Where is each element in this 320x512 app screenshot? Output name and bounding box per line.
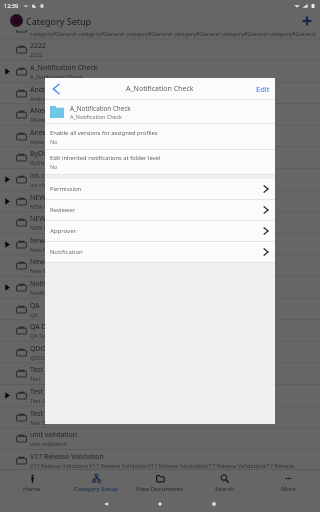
staticText: A_Notification Check bbox=[30, 63, 98, 73]
staticText: QA Demo bbox=[30, 332, 55, 339]
staticText: A_Notification Check bbox=[70, 113, 122, 120]
staticText: Home bbox=[23, 485, 41, 493]
button[interactable]: Notification bbox=[0, 276, 320, 298]
staticText: ios check bbox=[30, 181, 54, 188]
staticText: Search bbox=[215, 485, 234, 493]
staticText: unit validation bbox=[30, 430, 78, 440]
button[interactable]: A_Notification Check bbox=[45, 100, 275, 123]
staticText: A_Notification Check bbox=[30, 73, 84, 80]
button[interactable]: A_Notification Check bbox=[0, 60, 320, 82]
button[interactable]: Permission bbox=[45, 179, 275, 199]
button[interactable]: ByDivision bbox=[0, 146, 320, 168]
staticText: Notification bbox=[50, 248, 83, 256]
staticText: Test bbox=[30, 365, 44, 375]
staticText: Android bbox=[30, 95, 51, 102]
staticText: ByDivision bbox=[30, 149, 65, 159]
staticText: Anew bbox=[30, 128, 49, 138]
staticText: NEW CAT bbox=[30, 193, 60, 203]
button[interactable]: NEW CAT bbox=[0, 190, 320, 212]
staticText: New Test bbox=[30, 267, 54, 274]
staticText: New Folder bbox=[30, 246, 60, 253]
button[interactable]: More bbox=[256, 470, 320, 496]
button[interactable]: Edit inherited notifications at folder l… bbox=[45, 150, 275, 174]
staticText: V17 Release Validation bbox=[30, 452, 104, 462]
staticText: unit validation bbox=[30, 440, 67, 447]
button[interactable]: Add bbox=[299, 13, 315, 29]
button[interactable]: Search bbox=[192, 470, 256, 496]
staticText: A_Notification Check bbox=[70, 104, 131, 113]
staticText: category#General category#General catego… bbox=[30, 30, 317, 37]
staticText: NEW CAT2 bbox=[30, 224, 57, 231]
button[interactable]: unit validation bbox=[0, 427, 320, 449]
button[interactable]: Test 3 bbox=[0, 406, 320, 428]
button[interactable]: QDOC bbox=[0, 341, 320, 363]
staticText: 2222 bbox=[30, 41, 47, 51]
button[interactable]: Test 2 bbox=[0, 384, 320, 406]
button[interactable]: ios check bbox=[0, 168, 320, 190]
staticText: Approver bbox=[50, 227, 76, 235]
button[interactable]: View Documents bbox=[128, 470, 192, 496]
staticText: ByDivision bbox=[30, 159, 57, 166]
button[interactable]: Edit bbox=[251, 81, 275, 97]
staticText: QDOC bbox=[30, 354, 47, 361]
staticText: Edit inherited notifications at folder l… bbox=[50, 154, 161, 162]
staticText: New Test bbox=[30, 257, 60, 267]
staticText: QA Demo bbox=[30, 322, 62, 332]
button[interactable]: QA bbox=[0, 298, 320, 320]
staticText: No bbox=[50, 163, 58, 170]
button[interactable]: category#General category#General bbox=[0, 30, 320, 39]
staticText: NEW CAT2 bbox=[30, 214, 64, 224]
staticText: Test bbox=[30, 375, 41, 382]
staticText: Enable all versions for assigned profile… bbox=[50, 129, 158, 137]
button[interactable]: Notification bbox=[45, 242, 275, 262]
staticText: No bbox=[50, 138, 58, 145]
staticText: Category Setup bbox=[74, 485, 118, 493]
staticText: ANew cat bbox=[30, 106, 61, 116]
staticText: Test 3 bbox=[30, 419, 45, 426]
staticText: Edit bbox=[256, 84, 270, 94]
staticText: Reviewer bbox=[50, 206, 76, 214]
staticText: 12:39 bbox=[4, 2, 19, 9]
staticText: Notification bbox=[30, 279, 69, 289]
staticText: New Folder bbox=[30, 236, 68, 246]
button[interactable]: Reviewer bbox=[45, 200, 275, 220]
button[interactable]: Test bbox=[0, 362, 320, 384]
staticText: ios check bbox=[30, 171, 60, 181]
staticText: QA bbox=[30, 301, 40, 311]
button[interactable]: V17 Release Validation bbox=[0, 449, 320, 469]
staticText: Test 3 bbox=[30, 409, 50, 419]
staticText: Test 2 bbox=[30, 397, 45, 404]
staticText: Anew bbox=[30, 138, 45, 145]
staticText: View Documents bbox=[136, 485, 184, 493]
staticText: V17 Release Validation V17 Release Valid… bbox=[30, 462, 295, 469]
staticText: A_Notification Check bbox=[126, 84, 194, 94]
staticText: More bbox=[281, 485, 296, 493]
staticText: ANew cat bbox=[30, 116, 55, 123]
staticText: NEW CAT bbox=[30, 203, 54, 210]
button[interactable]: Home bbox=[0, 470, 64, 496]
staticText: 2222 bbox=[30, 51, 43, 58]
button[interactable]: NEW CAT2 bbox=[0, 211, 320, 233]
staticText: Android bbox=[30, 85, 57, 95]
button[interactable]: 2222 bbox=[0, 38, 320, 60]
button[interactable]: QA Demo bbox=[0, 319, 320, 341]
button[interactable]: Enable all versions for assigned profile… bbox=[45, 124, 275, 149]
button[interactable]: Approver bbox=[45, 221, 275, 241]
button[interactable]: New Test bbox=[0, 254, 320, 276]
button[interactable]: Android bbox=[0, 82, 320, 104]
staticText: QDOC bbox=[30, 344, 51, 354]
staticText: Category Setup bbox=[26, 15, 92, 27]
staticText: QA bbox=[30, 311, 38, 318]
button[interactable]: ANew cat bbox=[0, 103, 320, 125]
button[interactable]: Category Setup bbox=[64, 470, 128, 496]
button[interactable]: New Folder bbox=[0, 233, 320, 255]
staticText: Test 2 bbox=[30, 387, 50, 397]
staticText: Notification bbox=[30, 289, 61, 296]
button[interactable]: Back bbox=[49, 82, 63, 96]
staticText: Permission bbox=[50, 185, 82, 193]
button[interactable]: Anew bbox=[0, 125, 320, 147]
